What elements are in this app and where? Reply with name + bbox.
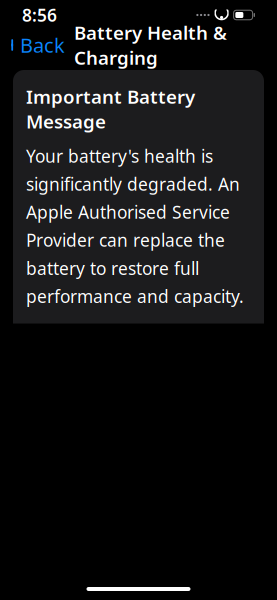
staticText: 8:56 bbox=[22, 3, 57, 26]
staticText: Back bbox=[20, 32, 65, 58]
staticText: Peak Performance Capability bbox=[26, 586, 187, 600]
staticText: Battery Health & Charging bbox=[74, 20, 227, 70]
button[interactable]: Back bbox=[0, 26, 65, 64]
button[interactable]: More about service options… bbox=[26, 308, 183, 373]
staticText: Important Battery Message bbox=[26, 84, 195, 134]
staticText: Your battery's health is significantly d… bbox=[26, 145, 244, 308]
